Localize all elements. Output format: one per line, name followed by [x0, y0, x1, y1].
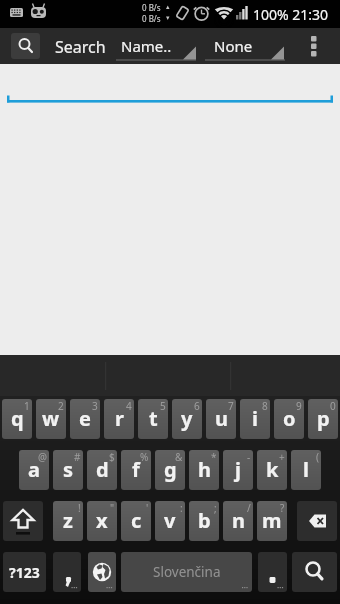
staticText: u	[215, 405, 228, 432]
button[interactable]: j	[223, 450, 253, 490]
staticText: 100% 21:30	[253, 5, 329, 24]
button[interactable]	[302, 28, 326, 63]
button[interactable]: c	[121, 501, 151, 541]
staticText: Slovenčina	[153, 563, 221, 581]
staticText: b	[198, 507, 211, 534]
staticText: q	[11, 405, 24, 432]
staticText: 8	[262, 399, 268, 413]
staticText: z	[63, 507, 73, 534]
button[interactable]: m	[257, 501, 287, 541]
staticText: x	[96, 507, 108, 534]
staticText: m	[262, 507, 282, 534]
staticText: 7	[228, 399, 234, 413]
staticText: p	[317, 405, 330, 432]
staticText: g	[164, 456, 177, 483]
button[interactable]: y	[172, 399, 202, 439]
button[interactable]: t	[138, 399, 168, 439]
staticText: o	[283, 405, 296, 432]
staticText: i	[252, 405, 258, 432]
staticText: Name..	[121, 36, 172, 56]
button[interactable]	[11, 33, 40, 59]
staticText: '	[146, 501, 149, 515]
staticText: -	[247, 450, 251, 464]
staticText: 9	[296, 399, 302, 413]
button[interactable]: Name..	[112, 32, 196, 61]
staticText: ?	[280, 501, 285, 515]
staticText: 2	[58, 399, 64, 413]
staticText: a	[28, 456, 40, 483]
button[interactable]: z	[53, 501, 83, 541]
staticText: 6	[194, 399, 200, 413]
staticText: v	[164, 507, 176, 534]
button[interactable]	[7, 72, 333, 103]
staticText: y	[181, 405, 193, 432]
staticText: e	[79, 405, 91, 432]
staticText: #	[74, 450, 81, 464]
button[interactable]: k	[257, 450, 287, 490]
button[interactable]: s	[53, 450, 83, 490]
button[interactable]: o	[274, 399, 304, 439]
staticText: 0 B/s	[142, 13, 161, 24]
staticText: +	[279, 450, 285, 464]
button[interactable]: d	[87, 450, 117, 490]
button[interactable]: a	[19, 450, 49, 490]
button[interactable]: ?123	[3, 552, 46, 592]
button[interactable]: g	[155, 450, 185, 490]
button[interactable]	[88, 552, 116, 592]
staticText: 0	[330, 399, 336, 413]
staticText: 1	[24, 399, 30, 413]
button[interactable]: Slovenčina	[121, 552, 252, 592]
staticText: :	[180, 501, 183, 515]
staticText: (	[316, 450, 319, 464]
staticText: /	[247, 501, 251, 515]
button[interactable]: v	[155, 501, 185, 541]
staticText: c	[131, 507, 142, 534]
button[interactable]: u	[206, 399, 236, 439]
button[interactable]	[292, 552, 337, 592]
staticText: 4	[126, 399, 132, 413]
staticText: ?123	[9, 563, 40, 582]
staticText: &	[175, 450, 183, 464]
staticText: !	[78, 501, 81, 515]
button[interactable]: r	[104, 399, 134, 439]
button[interactable]	[258, 552, 287, 592]
staticText: w	[42, 405, 60, 432]
button[interactable]	[53, 552, 81, 592]
staticText: l	[303, 456, 309, 483]
staticText: n	[232, 507, 245, 534]
staticText: k	[266, 456, 279, 483]
button[interactable]: None	[200, 32, 286, 61]
staticText: 5	[160, 399, 166, 413]
staticText: @	[38, 450, 47, 464]
staticText: s	[63, 456, 74, 483]
staticText: 3	[92, 399, 98, 413]
staticText: *	[211, 450, 217, 464]
staticText: d	[96, 456, 109, 483]
button[interactable]: f	[121, 450, 151, 490]
button[interactable]: n	[223, 501, 253, 541]
button[interactable]: p	[308, 399, 338, 439]
staticText: "	[110, 501, 115, 515]
staticText: 0 B/s	[142, 2, 161, 13]
staticText: %	[140, 450, 149, 464]
staticText: t	[149, 405, 158, 432]
staticText: f	[132, 456, 140, 483]
button[interactable]: q	[2, 399, 32, 439]
button[interactable]: l	[291, 450, 321, 490]
staticText: j	[235, 456, 241, 483]
button[interactable]: i	[240, 399, 270, 439]
button[interactable]: e	[70, 399, 100, 439]
button[interactable]	[3, 501, 43, 541]
button[interactable]	[297, 501, 337, 541]
staticText: None	[214, 36, 253, 56]
staticText: r	[115, 405, 124, 432]
staticText: ;	[214, 501, 217, 515]
button[interactable]: x	[87, 501, 117, 541]
staticText: $	[109, 450, 115, 464]
button[interactable]: b	[189, 501, 219, 541]
staticText: Search	[55, 36, 106, 58]
staticText: h	[198, 456, 211, 483]
button[interactable]: w	[36, 399, 66, 439]
button[interactable]: h	[189, 450, 219, 490]
